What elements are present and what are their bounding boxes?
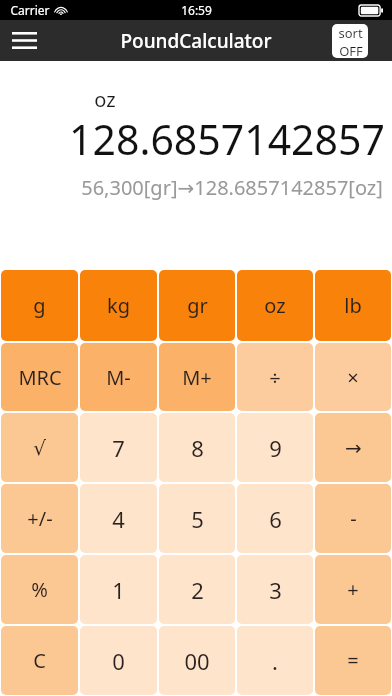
staticText: 6 [269,504,282,534]
staticText: C [33,647,46,674]
staticText: → [345,436,362,459]
staticText: √ [33,436,46,459]
button[interactable]: kg [80,270,157,341]
button[interactable]: 00 [159,626,235,695]
staticText: gr [187,292,208,319]
button[interactable]: C [1,626,78,695]
staticText: 4 [112,504,125,534]
button[interactable]: - [315,484,391,553]
button[interactable]: → [315,413,391,482]
button[interactable]: 5 [159,484,235,553]
button[interactable]: MRC [1,343,78,411]
button[interactable]: lb [315,270,391,341]
button[interactable]: . [237,626,313,695]
staticText: oz [94,86,116,113]
staticText: lb [344,292,362,319]
staticText: g [33,292,46,319]
button[interactable]: Menu [0,20,48,61]
button[interactable]: 4 [80,484,157,553]
button[interactable]: ÷ [237,343,313,411]
staticText: 00 [184,646,210,676]
staticText: ÷ [269,364,281,391]
staticText: sort [338,24,363,42]
button[interactable]: +/- [1,484,78,553]
staticText: OFF [339,42,363,58]
staticText: . [272,646,278,676]
staticText: % [31,576,48,603]
button[interactable]: g [1,270,78,341]
staticText: 8 [191,433,204,463]
staticText: +/- [27,505,53,532]
button[interactable]: 0 [80,626,157,695]
staticText: 5 [191,504,204,534]
button[interactable]: 8 [159,413,235,482]
staticText: 7 [112,433,125,463]
button[interactable]: % [1,555,78,624]
staticText: 9 [269,433,282,463]
button[interactable]: oz [237,270,313,341]
staticText: - [350,505,357,532]
staticText: oz [264,292,286,319]
staticText: 0 [112,646,125,676]
button[interactable]: + [315,555,391,624]
staticText: = [347,647,359,674]
staticText: 2 [191,575,204,605]
button[interactable]: 2 [159,555,235,624]
button[interactable]: 7 [80,413,157,482]
button[interactable]: gr [159,270,235,341]
staticText: MRC [18,364,62,391]
staticText: Carrier [10,2,50,18]
button[interactable]: 9 [237,413,313,482]
button[interactable]: 3 [237,555,313,624]
staticText: × [347,364,359,391]
button[interactable]: M+ [159,343,235,411]
staticText: kg [107,292,130,319]
staticText: 16:59 [181,2,212,18]
staticText: 128.6857142857 [69,111,385,167]
button[interactable]: = [315,626,391,695]
button[interactable]: M- [80,343,157,411]
button[interactable]: 6 [237,484,313,553]
staticText: M- [106,364,131,391]
button[interactable]: × [315,343,391,411]
staticText: 1 [112,575,125,605]
staticText: M+ [182,364,212,391]
staticText: 56,300[gr]→128.6857142857[oz] [81,174,383,201]
button[interactable]: sort [332,24,368,58]
button[interactable]: √ [1,413,78,482]
button[interactable]: 1 [80,555,157,624]
staticText: PoundCalculator [120,28,272,54]
staticText: 3 [269,575,282,605]
staticText: + [347,576,359,603]
